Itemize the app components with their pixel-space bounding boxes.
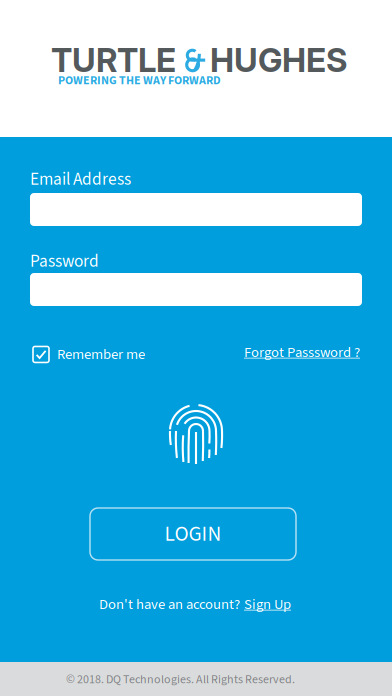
staticText: Don't have an account? (99, 594, 240, 615)
button[interactable]: Sign Up (244, 594, 291, 615)
button[interactable]: Sign in with Touch ID (169, 407, 224, 464)
staticText: Sign Up (244, 594, 291, 615)
staticText: POWERING THE WAY FORWARD (58, 72, 221, 89)
staticText: © 2018. DQ Technologies. All Rights Rese… (66, 671, 295, 688)
staticText: Password (30, 249, 99, 274)
staticText: TURTLE (51, 40, 176, 80)
staticText: LOGIN (164, 519, 221, 549)
staticText: HUGHES (210, 40, 348, 80)
button[interactable]: Forgot Passsword ? (244, 342, 360, 363)
button[interactable]: LOGIN (90, 508, 296, 560)
staticText: Email Address (30, 167, 131, 192)
button[interactable]: Remember me (33, 344, 145, 365)
staticText: Forgot Passsword ? (244, 342, 360, 363)
staticText: Remember me (57, 344, 145, 365)
